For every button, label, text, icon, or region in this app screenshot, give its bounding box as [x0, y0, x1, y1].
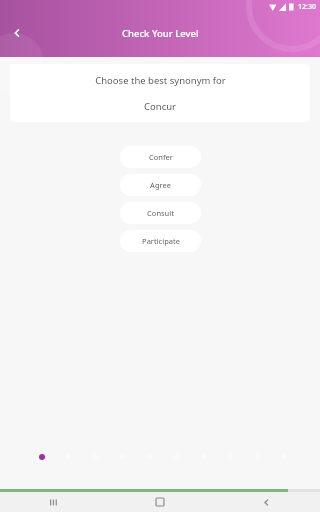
button[interactable]: Consult	[120, 202, 201, 224]
button[interactable]: Back	[0, 16, 34, 50]
staticText: Confer	[149, 152, 173, 162]
button[interactable]: Confer	[120, 146, 201, 168]
button[interactable]: Participate	[120, 230, 201, 252]
button[interactable]: Page 1	[36, 451, 47, 462]
button[interactable]: Agree	[120, 174, 201, 196]
staticText: Consult	[147, 208, 174, 218]
button[interactable]: Recents	[0, 492, 106, 512]
staticText: Participate	[142, 236, 180, 246]
staticText: Agree	[150, 180, 171, 190]
button[interactable]: Home	[106, 492, 213, 512]
staticText: Concur	[144, 100, 176, 113]
button[interactable]: Back	[213, 492, 320, 512]
staticText: Choose the best synonym for	[95, 74, 226, 87]
staticText: Check Your Level	[122, 27, 199, 40]
staticText: 12:30	[298, 2, 316, 12]
